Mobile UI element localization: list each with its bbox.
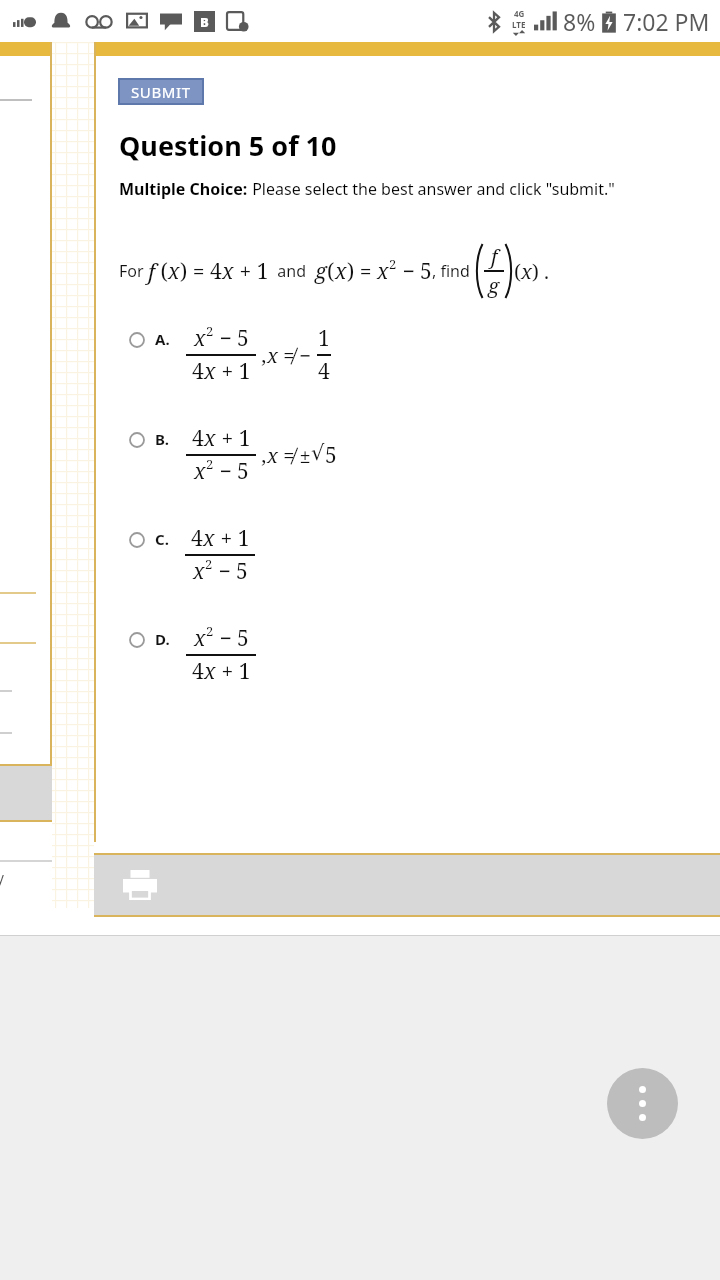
staticText: x <box>335 257 347 286</box>
staticText: , <box>256 442 267 469</box>
staticText: C. <box>155 529 169 549</box>
staticText: ( <box>327 257 335 286</box>
staticText: x <box>267 342 278 369</box>
staticText: + 1 <box>234 257 269 286</box>
staticText: x <box>194 324 206 353</box>
staticText: 1 <box>318 324 330 353</box>
staticText: 4G <box>514 8 525 19</box>
staticText: − 5 <box>397 257 432 286</box>
staticText: 4 <box>318 357 330 386</box>
staticText: 2 <box>206 622 214 640</box>
staticText: cy <box>0 868 4 887</box>
staticText: ( <box>514 258 521 285</box>
staticText: 8% <box>563 6 596 37</box>
staticText: , <box>256 342 267 369</box>
staticText: x <box>267 442 278 469</box>
staticText: x <box>194 624 206 653</box>
staticText: 7:02 PM <box>623 6 710 37</box>
staticText: x <box>521 258 532 285</box>
staticText: B <box>200 13 209 31</box>
staticText: LTE <box>512 19 526 30</box>
staticText: + 1 <box>216 357 251 386</box>
staticText: 5 <box>325 441 337 470</box>
staticText: x <box>222 257 234 286</box>
staticText: Question 5 of 10 <box>119 127 337 164</box>
staticText: x <box>193 557 205 586</box>
staticText: + 1 <box>215 524 250 553</box>
staticText: 2 <box>206 455 214 473</box>
staticText: f <box>491 243 498 270</box>
staticText: Multiple Choice: <box>119 178 248 200</box>
staticText: For <box>119 260 148 282</box>
staticText: ) = <box>347 257 377 286</box>
staticText: − 5 <box>214 324 249 353</box>
staticText: and <box>269 260 315 282</box>
staticText: x <box>168 257 180 286</box>
staticText: √ <box>311 441 325 465</box>
button[interactable]: B. <box>94 426 720 526</box>
staticText: , find <box>432 260 474 282</box>
staticText: 4 <box>192 424 204 453</box>
staticText: 4 <box>191 524 203 553</box>
staticText: + 1 <box>216 424 251 453</box>
button[interactable]: D. <box>94 626 720 726</box>
staticText: g <box>315 257 327 286</box>
staticText: 2 <box>206 322 214 340</box>
button[interactable]: C. <box>94 526 720 626</box>
staticText: ≠ ± <box>278 442 311 469</box>
staticText: 4 <box>192 657 204 686</box>
staticText: x <box>377 257 389 286</box>
staticText: Please select the best answer and click … <box>248 178 615 200</box>
staticText: D. <box>155 629 170 649</box>
staticText: 2 <box>205 555 213 573</box>
staticText: x <box>204 657 216 686</box>
staticText: f <box>148 256 155 286</box>
staticText: g <box>488 272 500 299</box>
staticText: + 1 <box>216 657 251 686</box>
staticText: 4 <box>192 357 204 386</box>
staticText: x <box>204 424 216 453</box>
staticText: x <box>204 357 216 386</box>
staticText: ( <box>155 257 168 286</box>
staticText: − 5 <box>214 457 249 486</box>
staticText: 2 <box>389 255 397 273</box>
staticText: − 5 <box>214 624 249 653</box>
button[interactable]: Print <box>118 863 162 907</box>
button[interactable]: A. <box>94 326 720 426</box>
button[interactable]: SUBMIT <box>120 80 202 103</box>
staticText: x <box>203 524 215 553</box>
staticText: A. <box>155 329 170 349</box>
staticText: x <box>194 457 206 486</box>
staticText: ) . <box>532 258 550 285</box>
staticText: B. <box>155 429 170 449</box>
staticText: SUBMIT <box>131 82 191 102</box>
staticText: ) = 4 <box>180 257 222 286</box>
staticText: ≠ − <box>278 342 317 369</box>
staticText: − 5 <box>213 557 248 586</box>
button[interactable]: More options <box>607 1068 678 1139</box>
